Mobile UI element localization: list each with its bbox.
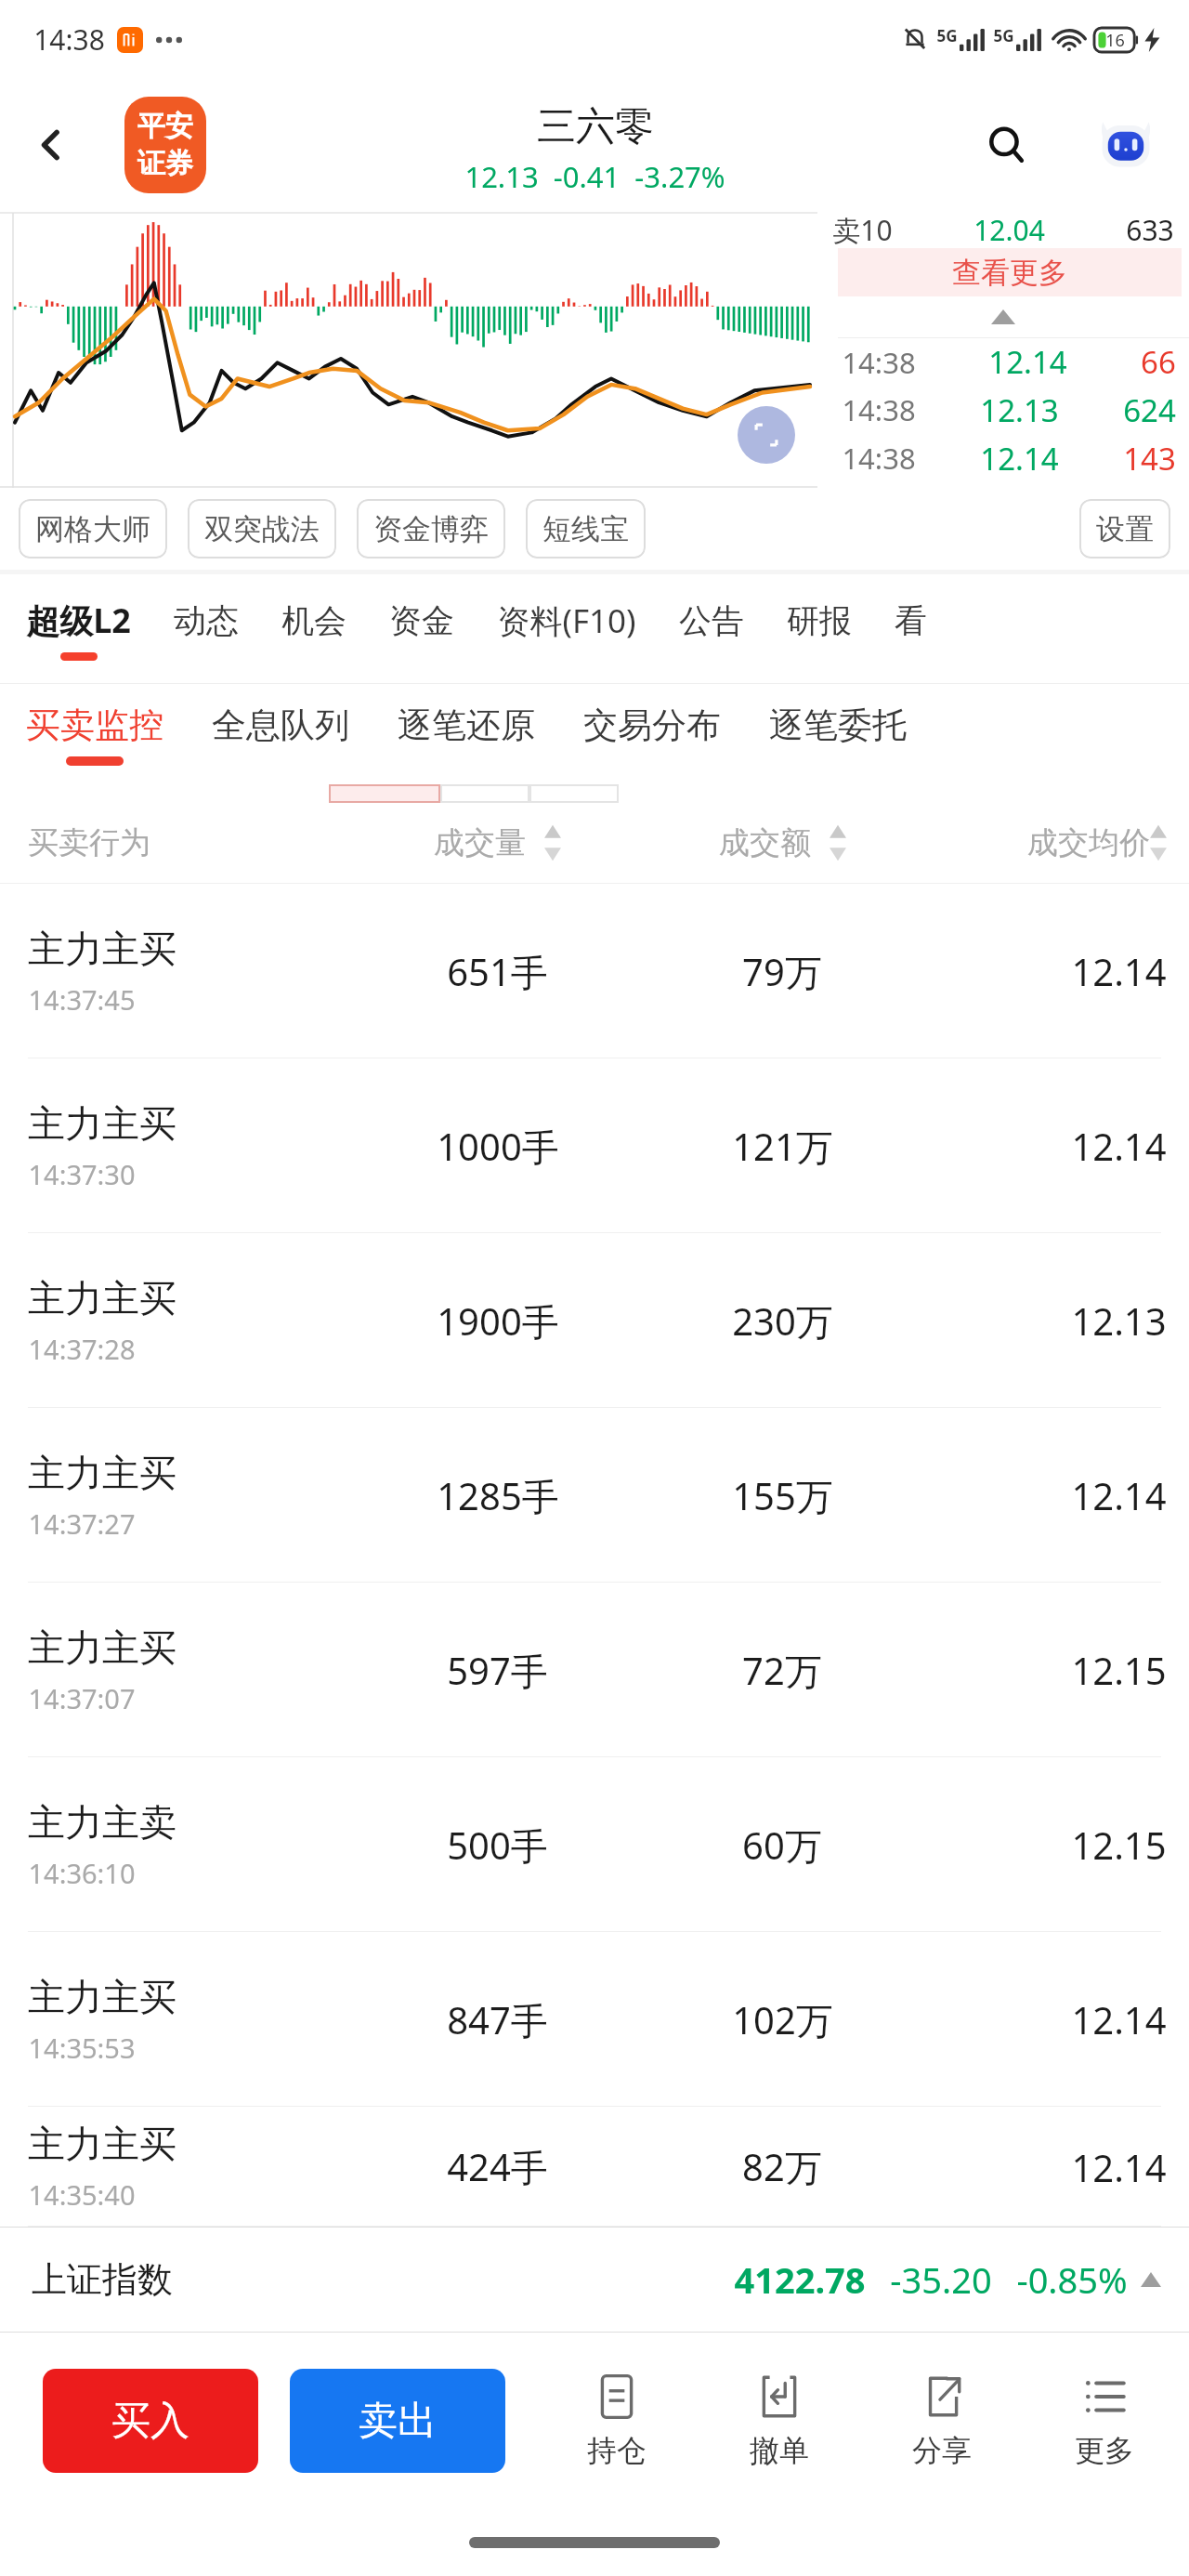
staticText: 14:37:30	[28, 1156, 136, 1192]
staticText: 公告	[679, 600, 744, 641]
button[interactable]: 查看更多	[838, 248, 1182, 296]
button[interactable]: 主力主买	[0, 1058, 1189, 1233]
staticText: 155万	[732, 1470, 833, 1521]
button[interactable]: 动态	[174, 595, 239, 664]
button[interactable]: 研报	[787, 595, 852, 664]
button[interactable]: 平安	[124, 97, 206, 193]
button[interactable]: 主力主买	[0, 2107, 1189, 2227]
staticText: 更多	[1075, 2432, 1134, 2469]
staticText: 14:37:07	[28, 1680, 136, 1716]
staticText: 买入	[111, 2397, 189, 2446]
staticText: 14:38	[842, 343, 916, 382]
staticText: 12.14	[1071, 1470, 1167, 1520]
button[interactable]: 持仓	[566, 2365, 668, 2477]
button[interactable]: 设置	[1079, 499, 1170, 559]
staticText: 14:36:10	[28, 1855, 136, 1891]
button[interactable]: 主力主买	[0, 1583, 1189, 1757]
button[interactable]: 撤单	[728, 2365, 830, 2477]
button[interactable]: 主力主买	[0, 1932, 1189, 2107]
button[interactable]: 机会	[281, 595, 346, 664]
staticText: 12.14	[980, 438, 1059, 480]
button[interactable]: 主力主买	[0, 884, 1189, 1058]
staticText: 72万	[742, 1645, 822, 1696]
button[interactable]: Search	[973, 112, 1040, 178]
staticText: 14:35:40	[28, 2176, 136, 2213]
staticText: 12.13	[1071, 1295, 1167, 1346]
staticText: 12.14	[1071, 946, 1167, 996]
staticText: 14:38	[842, 439, 916, 478]
staticText: 上证指数	[32, 2257, 173, 2302]
staticText: 卖出	[359, 2397, 437, 2446]
staticText: 230万	[732, 1295, 833, 1347]
staticText: 424手	[447, 2141, 548, 2192]
staticText: 短线宝	[542, 511, 629, 547]
staticText: 成交额	[719, 823, 811, 862]
button[interactable]: Assistant	[1089, 108, 1163, 182]
button[interactable]: 看	[895, 595, 927, 664]
staticText: 动态	[174, 600, 239, 641]
staticText: 66	[1141, 341, 1176, 383]
button[interactable]: 资料(F10)	[497, 593, 636, 666]
staticText: 633	[1126, 211, 1174, 248]
staticText: 交易分布	[583, 703, 721, 747]
button[interactable]: 双突战法	[188, 499, 336, 559]
staticText: 14:37:27	[28, 1505, 136, 1542]
button[interactable]: 公告	[679, 595, 744, 664]
staticText: -35.20	[890, 2255, 992, 2304]
staticText: 机会	[281, 600, 346, 641]
staticText: 主力主买	[28, 1275, 176, 1321]
staticText: 买卖监控	[26, 703, 163, 747]
staticText: 卖10	[832, 211, 893, 248]
staticText: 5G	[993, 25, 1014, 46]
staticText: 逐笔还原	[398, 703, 535, 747]
staticText: 主力主买	[28, 1624, 176, 1671]
staticText: 12.13 -0.41 -3.27%	[464, 157, 725, 196]
button[interactable]: 更多	[1053, 2365, 1156, 2477]
staticText: 60万	[742, 1820, 822, 1871]
staticText: 资金博弈	[373, 511, 489, 547]
button[interactable]: 买卖监控	[26, 700, 163, 769]
button[interactable]: 上证指数	[32, 2228, 1161, 2332]
button[interactable]: 逐笔还原	[398, 700, 535, 769]
button[interactable]: Back	[19, 112, 84, 177]
staticText: 14:35:53	[28, 2030, 136, 2066]
staticText: 102万	[732, 1994, 833, 2045]
staticText: 651手	[447, 946, 548, 997]
staticText: 1000手	[437, 1121, 559, 1172]
staticText: 撤单	[750, 2432, 809, 2469]
button[interactable]: 逐笔委托	[769, 700, 907, 769]
button[interactable]: 超级L2	[26, 592, 131, 666]
staticText: 超级L2	[26, 598, 131, 643]
button[interactable]: Fullscreen	[738, 406, 795, 464]
button[interactable]: 全息队列	[212, 700, 349, 769]
button[interactable]: 主力主买	[0, 1233, 1189, 1408]
staticText: 1285手	[437, 1470, 559, 1521]
button[interactable]: 短线宝	[526, 499, 646, 559]
button[interactable]: 交易分布	[583, 700, 721, 769]
staticText: 看	[895, 600, 927, 641]
staticText: 597手	[447, 1645, 548, 1696]
staticText: 500手	[447, 1820, 548, 1871]
button[interactable]: 主力主买	[0, 1408, 1189, 1583]
staticText: 12.14	[1071, 1994, 1167, 2044]
staticText: 成交量	[434, 823, 526, 862]
button[interactable]: 资金	[389, 595, 454, 664]
staticText: 14:38	[33, 20, 105, 59]
staticText: 三六零	[537, 102, 654, 151]
button[interactable]: 网格大师	[19, 499, 167, 559]
staticText: 4122.78	[734, 2255, 866, 2304]
staticText: 14:37:45	[28, 981, 136, 1018]
button[interactable]: 分享	[891, 2365, 993, 2477]
staticText: 12.15	[1071, 1820, 1167, 1870]
staticText: 主力主买	[28, 1974, 176, 2020]
button[interactable]: 资金博弈	[357, 499, 505, 559]
staticText: 主力主买	[28, 1450, 176, 1496]
staticText: 全息队列	[212, 703, 349, 747]
staticText: 资料(F10)	[497, 598, 636, 643]
staticText: 12.14	[988, 341, 1067, 383]
button[interactable]: 买入	[43, 2369, 258, 2473]
button[interactable]: 主力主卖	[0, 1757, 1189, 1932]
staticText: 12.14	[1071, 2142, 1167, 2192]
staticText: 14:37:28	[28, 1331, 136, 1367]
button[interactable]: 卖出	[290, 2369, 505, 2473]
